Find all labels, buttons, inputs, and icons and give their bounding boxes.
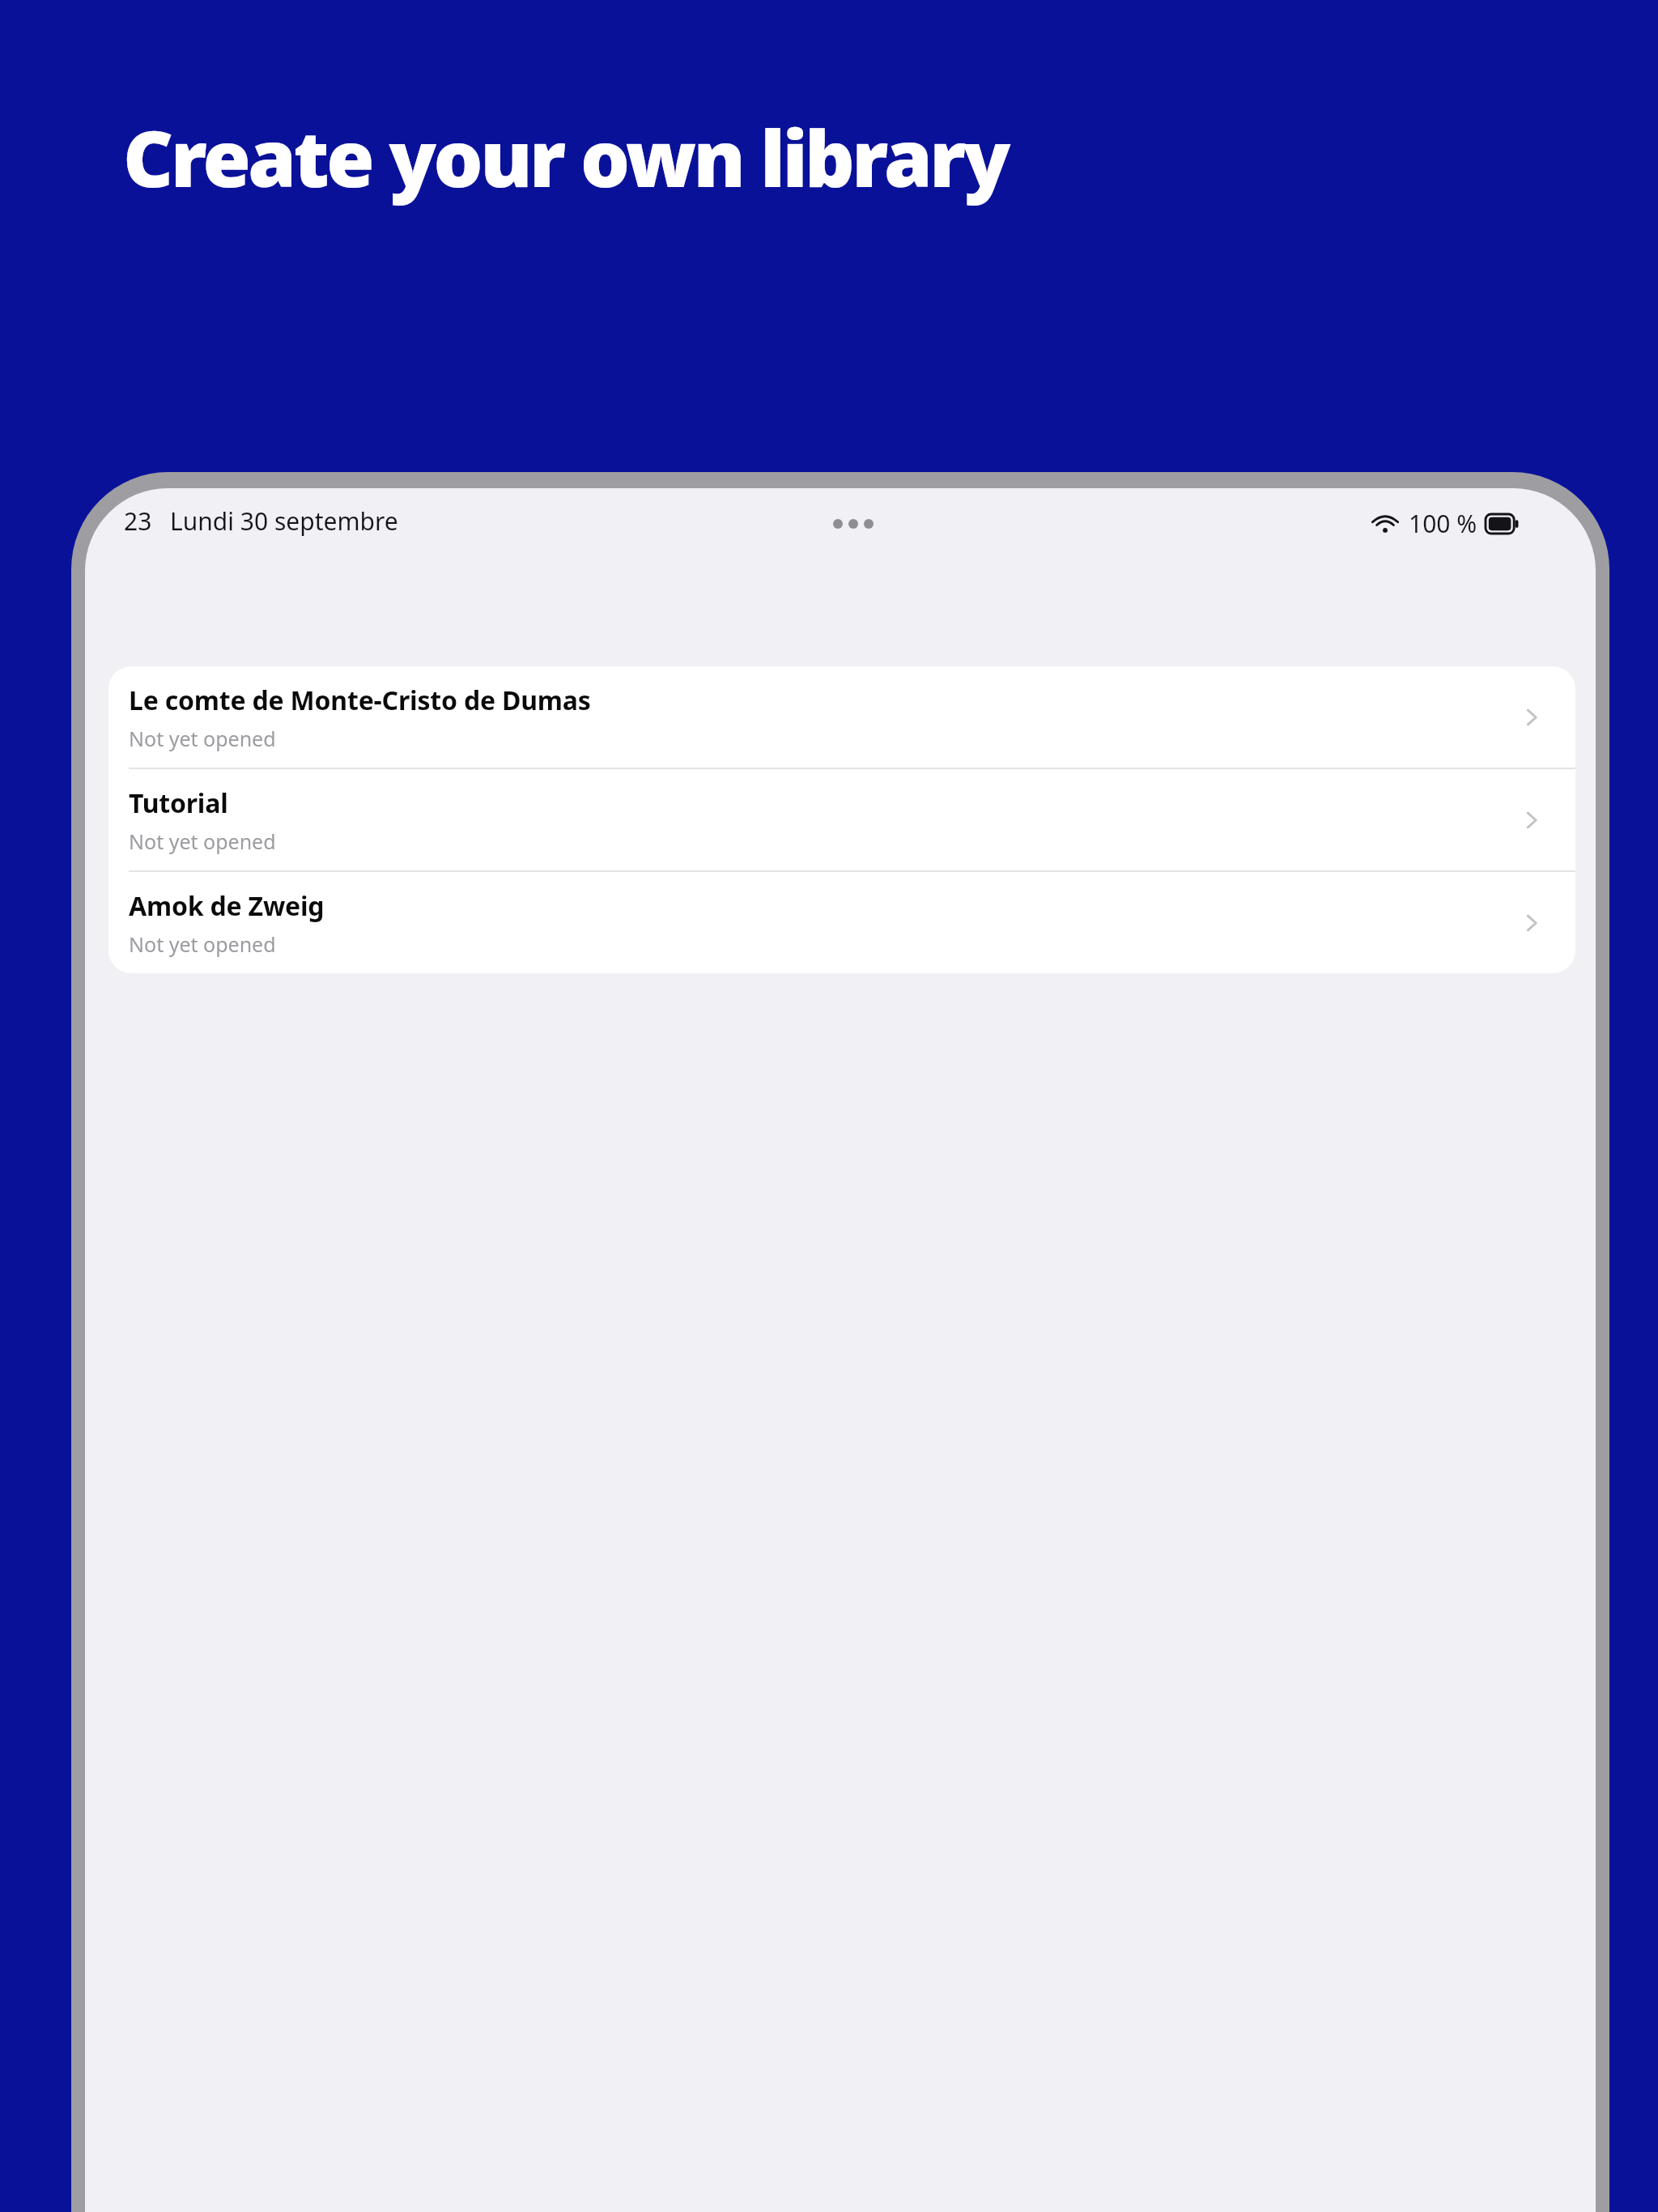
staticText: Not yet opened (129, 827, 276, 855)
staticText: Not yet opened (129, 725, 276, 752)
other: Open Tutorial (1512, 801, 1551, 840)
staticText: 100 % (1409, 507, 1477, 540)
staticText: Tutorial (129, 785, 228, 821)
staticText: 23 (124, 504, 152, 538)
staticText: Le comte de Monte-Cristo de Dumas (129, 683, 591, 718)
button[interactable]: Tutorial (108, 769, 1575, 870)
other: Open Le comte de Monte-Cristo de Dumas (1512, 698, 1551, 737)
staticText: Not yet opened (129, 930, 276, 958)
staticText: Create your own library (123, 104, 1008, 210)
other: Open Amok de Zweig (1512, 904, 1551, 942)
button[interactable]: Le comte de Monte-Cristo de Dumas (108, 666, 1575, 768)
staticText: Amok de Zweig (129, 888, 325, 924)
staticText: Lundi 30 septembre (170, 504, 398, 538)
button[interactable]: Amok de Zweig (108, 872, 1575, 973)
